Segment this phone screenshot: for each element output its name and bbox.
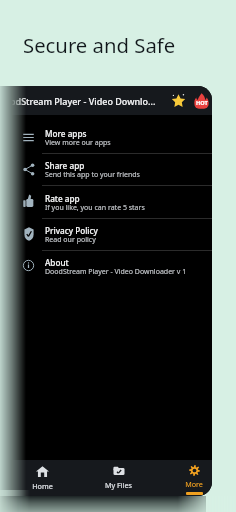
staticText: If you like, you can rate 5 stars [45, 203, 145, 213]
button[interactable]: Home [24, 460, 60, 496]
staticText: Read our policy [45, 235, 96, 245]
button[interactable]: More [176, 460, 212, 496]
staticText: More [185, 479, 203, 489]
staticText: View more our apps [45, 138, 111, 148]
staticText: HOT [196, 99, 208, 107]
staticText: DoodStream Player - Video Downlo... [0, 95, 156, 107]
staticText: Rate app [45, 193, 80, 204]
button[interactable]: Premium [171, 93, 186, 108]
button[interactable]: About [0, 250, 212, 282]
staticText: About [45, 257, 69, 268]
staticText: DoodStream Player - Video Downloader v 1 [45, 267, 187, 277]
staticText: Secure and Safe [23, 31, 176, 59]
staticText: My Files [105, 480, 132, 490]
staticText: Privacy Policy [45, 225, 98, 236]
button[interactable]: Hot [193, 93, 210, 110]
button[interactable]: Privacy Policy [0, 218, 212, 250]
staticText: Home [32, 481, 53, 491]
button[interactable]: My Files [100, 460, 136, 496]
staticText: Share app [45, 160, 85, 171]
button[interactable]: Share app [0, 153, 212, 185]
button[interactable]: Rate app [0, 186, 212, 218]
staticText: More apps [45, 128, 87, 139]
staticText: Send this app to your friends [45, 170, 140, 180]
button[interactable]: More apps [0, 121, 212, 153]
